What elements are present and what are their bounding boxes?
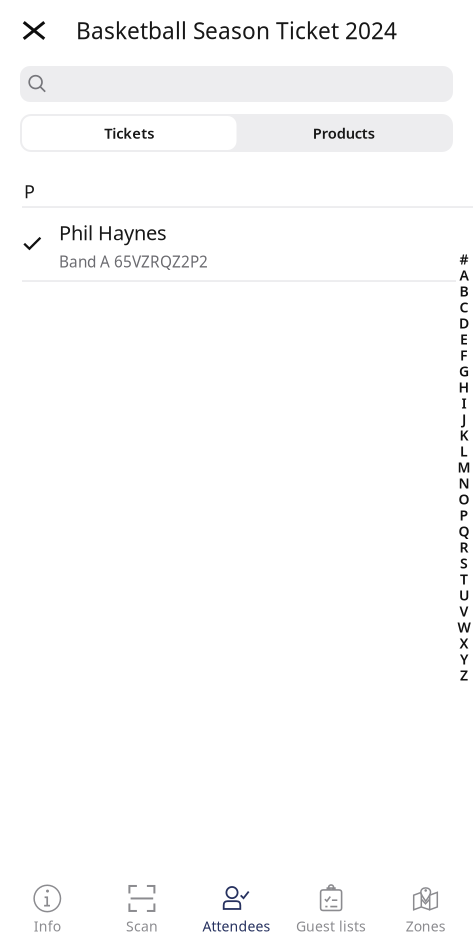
button[interactable]: Tickets xyxy=(22,116,236,150)
staticText: K xyxy=(459,425,468,445)
staticText: Y xyxy=(460,649,468,669)
staticText: I xyxy=(461,393,466,413)
staticText: M xyxy=(457,457,470,477)
staticText: J xyxy=(462,409,466,429)
staticText: Tickets xyxy=(104,123,154,143)
staticText: P xyxy=(459,505,468,525)
staticText: U xyxy=(459,585,469,605)
staticText: T xyxy=(460,569,468,589)
button[interactable]: Phil Haynes xyxy=(0,207,473,280)
staticText: Z xyxy=(460,665,468,685)
staticText: Q xyxy=(458,521,469,541)
staticText: F xyxy=(460,345,468,365)
staticText: W xyxy=(457,617,470,637)
button[interactable]: Attendees xyxy=(189,884,284,936)
staticText: Phil Haynes xyxy=(59,219,167,246)
staticText: Band A 65VZRQZ2P2 xyxy=(59,251,208,272)
staticText: G xyxy=(459,361,469,381)
staticText: A xyxy=(459,265,468,285)
staticText: L xyxy=(460,441,468,461)
button[interactable]: Info xyxy=(0,884,95,936)
staticText: N xyxy=(458,473,469,493)
staticText: H xyxy=(458,377,469,397)
staticText: R xyxy=(459,537,468,557)
staticText: B xyxy=(459,281,468,301)
button[interactable]: Search xyxy=(20,66,453,102)
staticText: C xyxy=(459,297,468,317)
staticText: P xyxy=(24,179,35,203)
staticText: Products xyxy=(313,123,375,143)
staticText: E xyxy=(460,329,468,349)
staticText: # xyxy=(459,249,468,269)
button[interactable]: Scan xyxy=(95,884,189,936)
button[interactable]: Products xyxy=(236,116,451,150)
staticText: O xyxy=(458,489,469,509)
button[interactable]: Close xyxy=(11,8,57,52)
staticText: V xyxy=(459,601,468,621)
staticText: Scan xyxy=(126,916,158,936)
button[interactable]: Guest lists xyxy=(284,884,378,936)
staticText: D xyxy=(459,313,469,333)
staticText: Info xyxy=(34,916,61,936)
staticText: Attendees xyxy=(202,916,270,936)
staticText: Basketball Season Ticket 2024 xyxy=(76,15,397,46)
staticText: X xyxy=(459,633,468,653)
staticText: Zones xyxy=(406,916,446,936)
staticText: S xyxy=(460,553,468,573)
button[interactable]: Zones xyxy=(378,884,473,936)
staticText: Guest lists xyxy=(296,916,366,936)
